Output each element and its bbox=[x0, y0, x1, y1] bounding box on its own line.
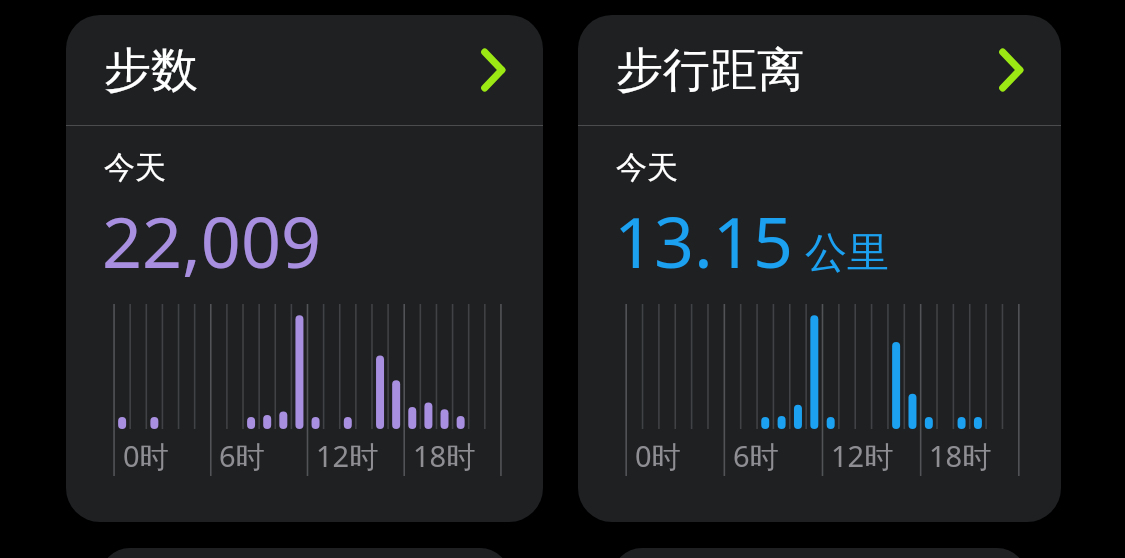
staticText: 12时 bbox=[316, 436, 379, 476]
staticText: 今天 bbox=[104, 148, 166, 187]
button[interactable] bbox=[100, 548, 510, 558]
staticText: 18时 bbox=[413, 436, 476, 476]
staticText: 6时 bbox=[219, 436, 265, 476]
staticText: 0时 bbox=[635, 436, 681, 476]
staticText: 步行距离 bbox=[616, 41, 804, 100]
button[interactable]: 步行距离 bbox=[578, 15, 1061, 522]
button[interactable] bbox=[612, 548, 1027, 558]
staticText: 0时 bbox=[123, 436, 169, 476]
staticText: 12时 bbox=[831, 436, 894, 476]
staticText: 公里 bbox=[805, 227, 889, 280]
staticText: 6时 bbox=[733, 436, 779, 476]
staticText: 步数 bbox=[104, 41, 198, 100]
staticText: 18时 bbox=[929, 436, 992, 476]
staticText: 22,009 bbox=[102, 193, 321, 288]
button[interactable]: 打开 步数 bbox=[473, 45, 513, 95]
button[interactable]: 打开 步行距离 bbox=[991, 45, 1031, 95]
staticText: 13.15 bbox=[614, 193, 793, 288]
button[interactable]: 步数 bbox=[66, 15, 543, 522]
staticText: 今天 bbox=[616, 148, 678, 187]
